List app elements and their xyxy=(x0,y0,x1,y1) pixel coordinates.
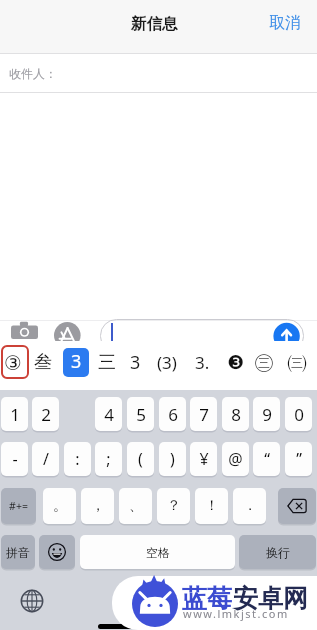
button[interactable]: 3 xyxy=(63,348,89,377)
button[interactable]: 取消 xyxy=(259,6,311,40)
button[interactable]: Camera xyxy=(11,320,39,341)
staticText: 2 xyxy=(41,403,51,426)
staticText: ③ xyxy=(4,351,22,374)
button[interactable]: ． xyxy=(233,488,266,524)
staticText: 1 xyxy=(10,403,20,426)
staticText: 9 xyxy=(262,403,272,426)
button[interactable]: ( xyxy=(127,442,154,476)
button[interactable] xyxy=(100,319,304,341)
button[interactable]: 换行 xyxy=(239,535,316,569)
button[interactable]: Emoji xyxy=(39,535,75,569)
button[interactable]: (3) xyxy=(157,345,177,379)
staticText: 8 xyxy=(231,403,241,426)
staticText: (3) xyxy=(157,351,177,374)
button[interactable]: 新信息 xyxy=(114,6,194,42)
staticText: #+= xyxy=(9,499,28,513)
button[interactable]: Switch keyboard xyxy=(20,589,44,613)
staticText: ( xyxy=(138,448,143,470)
button[interactable]: 。 xyxy=(43,488,76,524)
button[interactable]: 4 xyxy=(95,397,122,431)
button[interactable]: ㈢ xyxy=(287,345,307,379)
staticText: ❸ xyxy=(227,351,245,373)
button[interactable]: 空格 xyxy=(80,535,235,569)
staticText: ㊂ xyxy=(254,350,274,375)
button[interactable]: 0 xyxy=(285,397,312,431)
staticText: 、 xyxy=(129,497,143,515)
staticText: ; xyxy=(106,448,111,470)
staticText: 。 xyxy=(53,497,67,515)
button[interactable]: 5 xyxy=(127,397,154,431)
staticText: 收件人： xyxy=(9,66,57,81)
staticText: 蓝莓 xyxy=(182,583,232,614)
staticText: ¥ xyxy=(199,448,209,470)
button[interactable]: 三 xyxy=(98,345,116,379)
button[interactable]: ) xyxy=(159,442,186,476)
button[interactable]: Send xyxy=(273,322,300,341)
staticText: 0 xyxy=(294,403,304,426)
button[interactable]: ¥ xyxy=(190,442,217,476)
staticText: ) xyxy=(170,448,175,470)
button[interactable]: ❸ xyxy=(227,345,245,379)
staticText: 4 xyxy=(104,403,114,426)
staticText: 3. xyxy=(195,351,210,374)
staticText: “ xyxy=(264,448,270,470)
button[interactable]: #+= xyxy=(1,488,36,524)
button[interactable]: ; xyxy=(95,442,122,476)
button[interactable]: ” xyxy=(285,442,312,476)
button[interactable]: 1 xyxy=(1,397,28,431)
staticText: @ xyxy=(228,448,243,470)
staticText: ， xyxy=(91,497,105,515)
staticText: ” xyxy=(296,448,302,470)
staticText: 拼音 xyxy=(6,545,30,560)
staticText: 5 xyxy=(136,403,146,426)
button[interactable]: 3. xyxy=(195,345,210,379)
button[interactable]: ③ xyxy=(4,345,22,379)
staticText: 3 xyxy=(130,350,141,375)
staticText: 空格 xyxy=(146,545,170,560)
button[interactable]: 6 xyxy=(159,397,186,431)
button[interactable]: ㊂ xyxy=(254,345,274,379)
button[interactable]: - xyxy=(1,442,28,476)
button[interactable]: “ xyxy=(253,442,280,476)
staticText: 6 xyxy=(168,403,178,426)
staticText: 三 xyxy=(98,351,116,374)
button[interactable]: 收件人： xyxy=(0,54,317,92)
button[interactable]: 、 xyxy=(119,488,152,524)
staticText: / xyxy=(43,448,49,470)
staticText: 7 xyxy=(199,403,209,426)
button[interactable]: 叁 xyxy=(34,345,52,379)
button[interactable]: / xyxy=(32,442,59,476)
staticText: : xyxy=(75,448,80,470)
staticText: www.lmkjst.com xyxy=(183,606,289,621)
button[interactable]: ， xyxy=(81,488,114,524)
staticText: 3 xyxy=(71,349,82,374)
staticText: 换行 xyxy=(266,545,290,560)
button[interactable]: 9 xyxy=(253,397,280,431)
button[interactable]: App Store xyxy=(54,322,81,341)
staticText: 新信息 xyxy=(131,14,178,34)
button[interactable]: 7 xyxy=(190,397,217,431)
staticText: 叁 xyxy=(34,351,52,374)
staticText: 安卓网 xyxy=(233,583,308,614)
staticText: 取消 xyxy=(269,13,301,33)
button[interactable]: @ xyxy=(222,442,249,476)
staticText: ． xyxy=(243,497,257,515)
button[interactable]: Backspace xyxy=(278,488,316,524)
button[interactable]: 8 xyxy=(222,397,249,431)
button[interactable]: 2 xyxy=(32,397,59,431)
staticText: ㈢ xyxy=(287,350,307,375)
staticText: ！ xyxy=(205,497,219,515)
button[interactable]: 拼音 xyxy=(1,535,35,569)
staticText: - xyxy=(12,448,18,470)
button[interactable]: 3 xyxy=(130,345,141,379)
staticText: ？ xyxy=(167,497,181,515)
button[interactable]: ！ xyxy=(195,488,228,524)
button[interactable]: : xyxy=(64,442,91,476)
button[interactable]: ？ xyxy=(157,488,190,524)
